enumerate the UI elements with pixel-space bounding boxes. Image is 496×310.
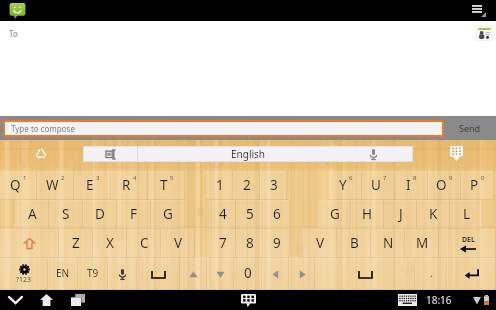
staticText: 8	[413, 174, 417, 182]
staticText: M	[416, 234, 429, 252]
button[interactable]: 4	[209, 200, 236, 229]
staticText: V	[316, 234, 325, 252]
staticText: .	[430, 266, 433, 280]
button[interactable]: Input options	[34, 147, 48, 161]
button[interactable]: Resize keyboard	[448, 145, 465, 163]
staticText: 0	[481, 174, 485, 182]
button[interactable]: 1	[206, 171, 233, 200]
button[interactable]: O	[428, 171, 461, 200]
staticText: 1	[23, 174, 27, 182]
button[interactable]: B	[337, 229, 371, 258]
button[interactable]: Recent apps	[65, 290, 91, 310]
staticText: 6	[273, 205, 281, 223]
staticText: W	[46, 176, 59, 194]
button[interactable]: 8	[236, 229, 263, 258]
staticText: I	[406, 176, 411, 194]
button[interactable]: U	[362, 171, 395, 200]
button[interactable]: ?123	[0, 258, 48, 290]
button[interactable]	[289, 258, 315, 290]
button[interactable]	[262, 258, 289, 290]
button[interactable]: G	[151, 200, 185, 229]
button[interactable]	[315, 258, 415, 290]
button[interactable]	[207, 258, 234, 290]
button[interactable]	[0, 229, 59, 258]
button[interactable]: X	[93, 229, 127, 258]
button[interactable]: DEL	[439, 229, 496, 258]
button[interactable]: G	[318, 200, 351, 229]
button[interactable]: Switch input method	[84, 147, 137, 161]
button[interactable]: P	[461, 171, 494, 200]
button[interactable]: Hide keyboard	[2, 290, 28, 310]
button[interactable]: A	[15, 200, 49, 229]
staticText: 2	[243, 176, 251, 194]
staticText: K	[429, 205, 438, 223]
button[interactable]: 6	[263, 200, 290, 229]
button[interactable]: T9	[78, 258, 108, 290]
staticText: 8	[246, 234, 254, 252]
staticText: 5	[170, 174, 174, 182]
staticText: English	[231, 147, 266, 161]
button[interactable]: 0	[234, 258, 262, 290]
staticText: T	[160, 176, 168, 194]
button[interactable]: Type to compose	[5, 122, 442, 135]
staticText: G	[330, 205, 340, 223]
staticText: 3	[270, 176, 278, 194]
button[interactable]: English	[84, 147, 412, 161]
button[interactable]: R	[111, 171, 148, 200]
button[interactable]: V	[303, 229, 337, 258]
button[interactable]	[137, 258, 180, 290]
button[interactable]: L	[450, 200, 483, 229]
button[interactable]: H	[351, 200, 384, 229]
button[interactable]: E	[74, 171, 111, 200]
button[interactable]: N	[371, 229, 405, 258]
staticText: Z	[72, 234, 80, 252]
button[interactable]: .	[415, 258, 447, 290]
button[interactable]: T	[148, 171, 185, 200]
button[interactable]: C	[127, 229, 161, 258]
staticText: S	[62, 205, 70, 223]
staticText: B	[350, 234, 359, 252]
staticText: D	[95, 205, 105, 223]
staticText: Send	[459, 122, 481, 134]
button[interactable]: J	[384, 200, 417, 229]
button[interactable]: 3	[260, 171, 287, 200]
button[interactable]	[447, 258, 496, 290]
staticText: U	[371, 176, 381, 194]
button[interactable]: Q	[0, 171, 37, 200]
staticText: G	[163, 205, 173, 223]
button[interactable]: Menu	[470, 0, 490, 21]
button[interactable]: Home	[33, 290, 59, 310]
button[interactable]: W	[37, 171, 74, 200]
staticText: X	[106, 234, 114, 252]
button[interactable]: 2	[233, 171, 260, 200]
staticText: 9	[449, 174, 453, 182]
button[interactable]: EN	[48, 258, 78, 290]
staticText: E	[86, 176, 94, 194]
button[interactable]: 7	[209, 229, 236, 258]
button[interactable]: M	[405, 229, 439, 258]
button[interactable]: Change keyboard	[235, 290, 261, 310]
button[interactable]: Z	[59, 229, 93, 258]
button[interactable]: I	[395, 171, 428, 200]
button[interactable]: Send	[444, 116, 496, 140]
button[interactable]	[108, 258, 137, 290]
button[interactable]: D	[83, 200, 117, 229]
button[interactable]: S	[49, 200, 83, 229]
staticText: O	[436, 176, 447, 194]
staticText: J	[399, 205, 403, 223]
button[interactable]	[180, 258, 207, 290]
button[interactable]: 9	[263, 229, 290, 258]
button[interactable]: F	[117, 200, 151, 229]
staticText: H	[362, 205, 373, 223]
staticText: 4	[133, 174, 137, 182]
button[interactable]: Y	[329, 171, 362, 200]
staticText: C	[140, 234, 149, 252]
button[interactable]: 5	[236, 200, 263, 229]
button[interactable]: Choose contact	[474, 24, 494, 42]
staticText: Q	[10, 176, 21, 194]
button[interactable]: V	[161, 229, 195, 258]
button[interactable]: Messaging	[9, 3, 26, 19]
button[interactable]: Voice input	[351, 147, 395, 161]
button[interactable]: K	[417, 200, 450, 229]
button[interactable]: Keyboard	[396, 290, 418, 310]
